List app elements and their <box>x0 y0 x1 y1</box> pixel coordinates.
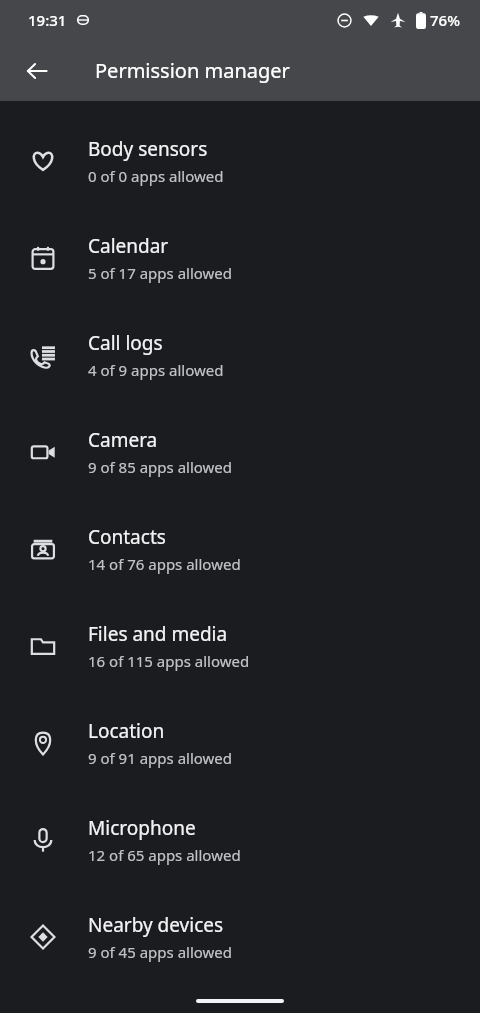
staticText: 14 of 76 apps allowed <box>88 554 241 574</box>
staticText: 12 of 65 apps allowed <box>88 845 241 865</box>
button[interactable]: Microphone <box>0 791 480 888</box>
staticText: 4 of 9 apps allowed <box>88 360 224 380</box>
staticText: 19:31 <box>28 10 67 30</box>
staticText: Contacts <box>88 524 166 550</box>
button[interactable]: Camera <box>0 403 480 500</box>
button[interactable]: Body sensors <box>0 112 480 209</box>
button[interactable]: Nearby devices <box>0 888 480 985</box>
staticText: 9 of 91 apps allowed <box>88 748 233 768</box>
staticText: Call logs <box>88 330 163 356</box>
staticText: 9 of 45 apps allowed <box>88 942 233 962</box>
staticText: Permission manager <box>95 57 290 84</box>
staticText: Microphone <box>88 815 196 841</box>
staticText: 76% <box>430 10 460 30</box>
staticText: Files and media <box>88 621 228 647</box>
staticText: Nearby devices <box>88 912 224 938</box>
staticText: 9 of 85 apps allowed <box>88 457 233 477</box>
staticText: Body sensors <box>88 136 208 162</box>
staticText: Camera <box>88 427 158 453</box>
button[interactable]: Contacts <box>0 500 480 597</box>
button[interactable]: Calendar <box>0 209 480 306</box>
staticText: Calendar <box>88 233 169 259</box>
staticText: 0 of 0 apps allowed <box>88 166 224 186</box>
staticText: Location <box>88 718 165 744</box>
button[interactable]: Call logs <box>0 306 480 403</box>
button[interactable]: Back <box>14 48 60 94</box>
staticText: 5 of 17 apps allowed <box>88 263 233 283</box>
staticText: 16 of 115 apps allowed <box>88 651 250 671</box>
button[interactable]: Location <box>0 694 480 791</box>
button[interactable]: Files and media <box>0 597 480 694</box>
